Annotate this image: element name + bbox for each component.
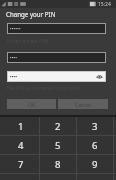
staticText: 9 — [92, 158, 98, 171]
button[interactable] — [7, 23, 106, 34]
staticText: Cancel — [75, 101, 92, 108]
button[interactable]: 1 — [3, 117, 39, 135]
button[interactable]: 7 — [3, 155, 39, 173]
button[interactable]: Cancel — [58, 99, 108, 109]
staticText: OK — [28, 101, 36, 108]
staticText: 6 — [92, 139, 98, 152]
button[interactable]: Show PIN — [93, 71, 106, 82]
staticText: 5 — [55, 139, 61, 152]
staticText: 8 — [55, 158, 61, 171]
button[interactable]: 3 — [77, 117, 113, 135]
staticText: The PIN you entered is not valid — [6, 85, 81, 92]
staticText: 15:24 — [98, 1, 111, 8]
staticText: 1 — [18, 120, 24, 133]
button[interactable] — [7, 52, 106, 63]
button[interactable]: 8 — [40, 155, 76, 173]
staticText: Change your PIN — [6, 10, 56, 18]
staticText: 2 — [55, 120, 61, 133]
staticText: 3 — [92, 120, 98, 133]
button[interactable]: 9 — [77, 155, 113, 173]
button[interactable]: 4 — [3, 136, 39, 154]
staticText: 4 — [18, 139, 24, 152]
button[interactable]: 6 — [77, 136, 113, 154]
button[interactable]: 5 — [40, 136, 76, 154]
button[interactable]: Show PIN — [7, 71, 106, 82]
staticText: 7 — [18, 158, 24, 171]
button[interactable]: 2 — [40, 117, 76, 135]
staticText: Enter a new PIN — [7, 37, 49, 44]
